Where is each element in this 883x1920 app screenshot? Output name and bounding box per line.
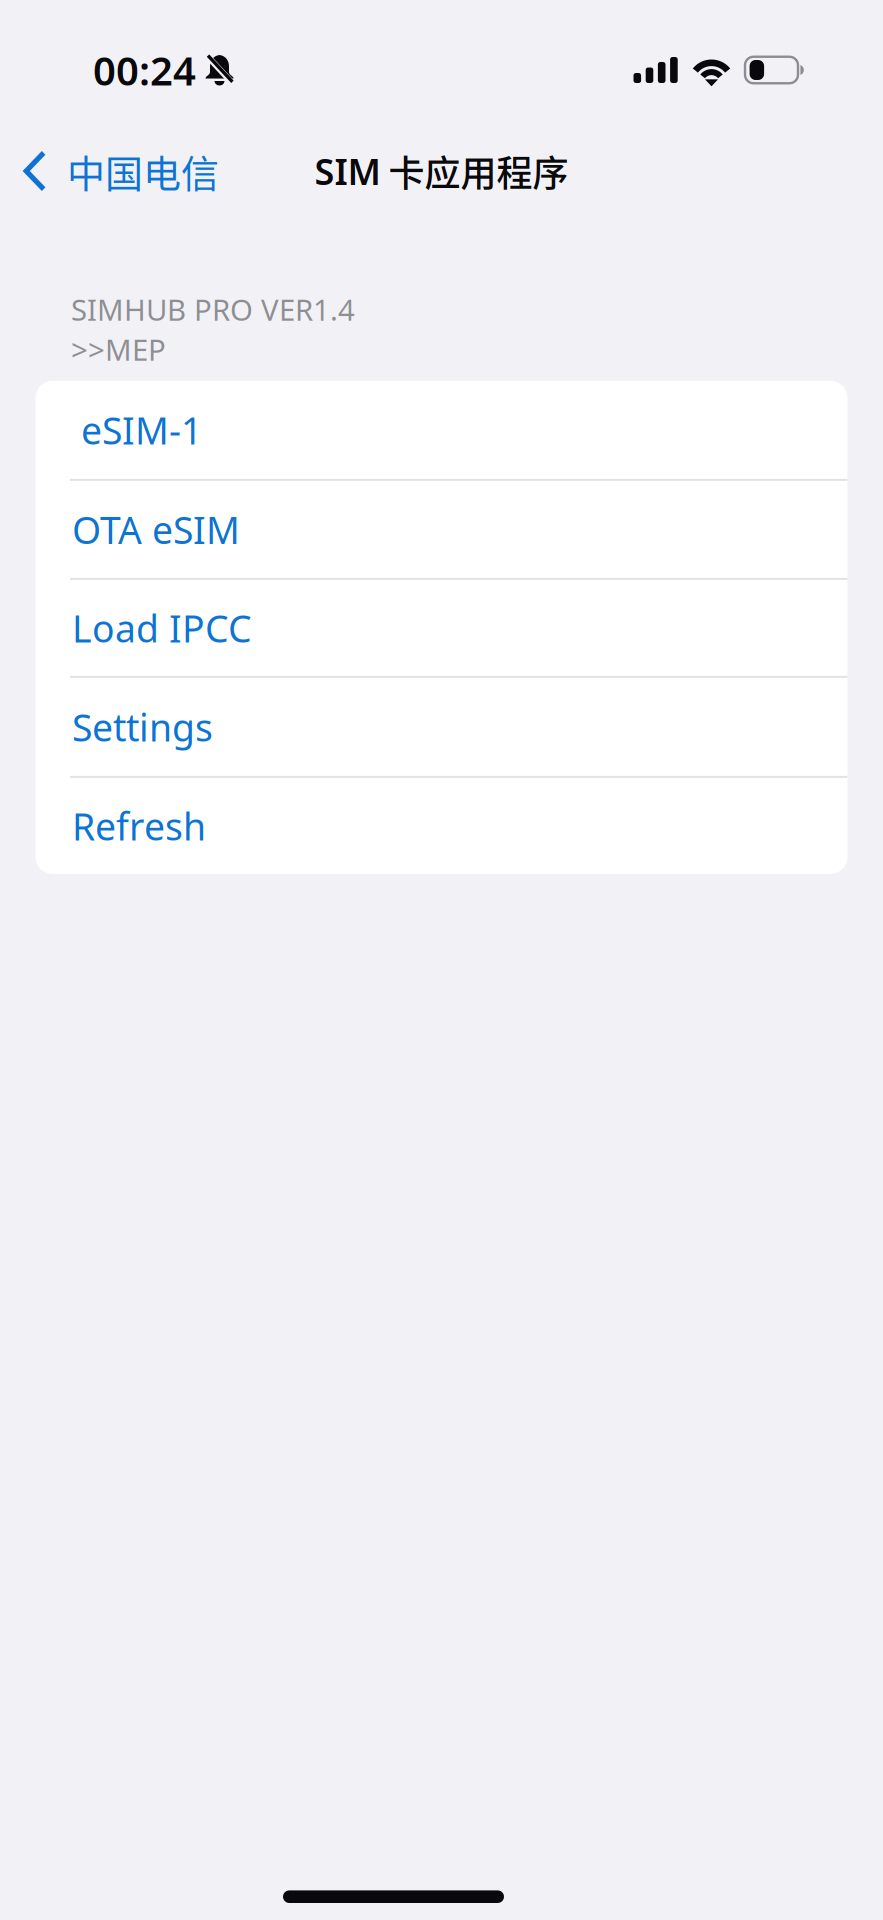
staticText: Settings (72, 702, 213, 752)
button[interactable]: eSIM-1 (35, 381, 847, 479)
button[interactable]: Refresh (35, 778, 847, 874)
staticText: Refresh (72, 801, 206, 851)
staticText: SIM (314, 147, 380, 195)
button[interactable]: Load IPCC (35, 580, 847, 676)
staticText: 卡应用程序 (380, 145, 568, 197)
staticText: eSIM-1 (81, 405, 202, 455)
staticText: 中国电信 (67, 143, 219, 198)
staticText: 00:24 (93, 43, 196, 96)
button[interactable]: OTA eSIM (35, 481, 847, 578)
button[interactable]: Back to 中国电信 (0, 129, 300, 213)
button[interactable]: Settings (35, 678, 847, 776)
staticText: Load IPCC (72, 603, 252, 653)
staticText: SIMHUB PRO VER1.4 (71, 290, 355, 329)
staticText: >>MEP (71, 330, 166, 369)
staticText: OTA eSIM (72, 505, 240, 554)
